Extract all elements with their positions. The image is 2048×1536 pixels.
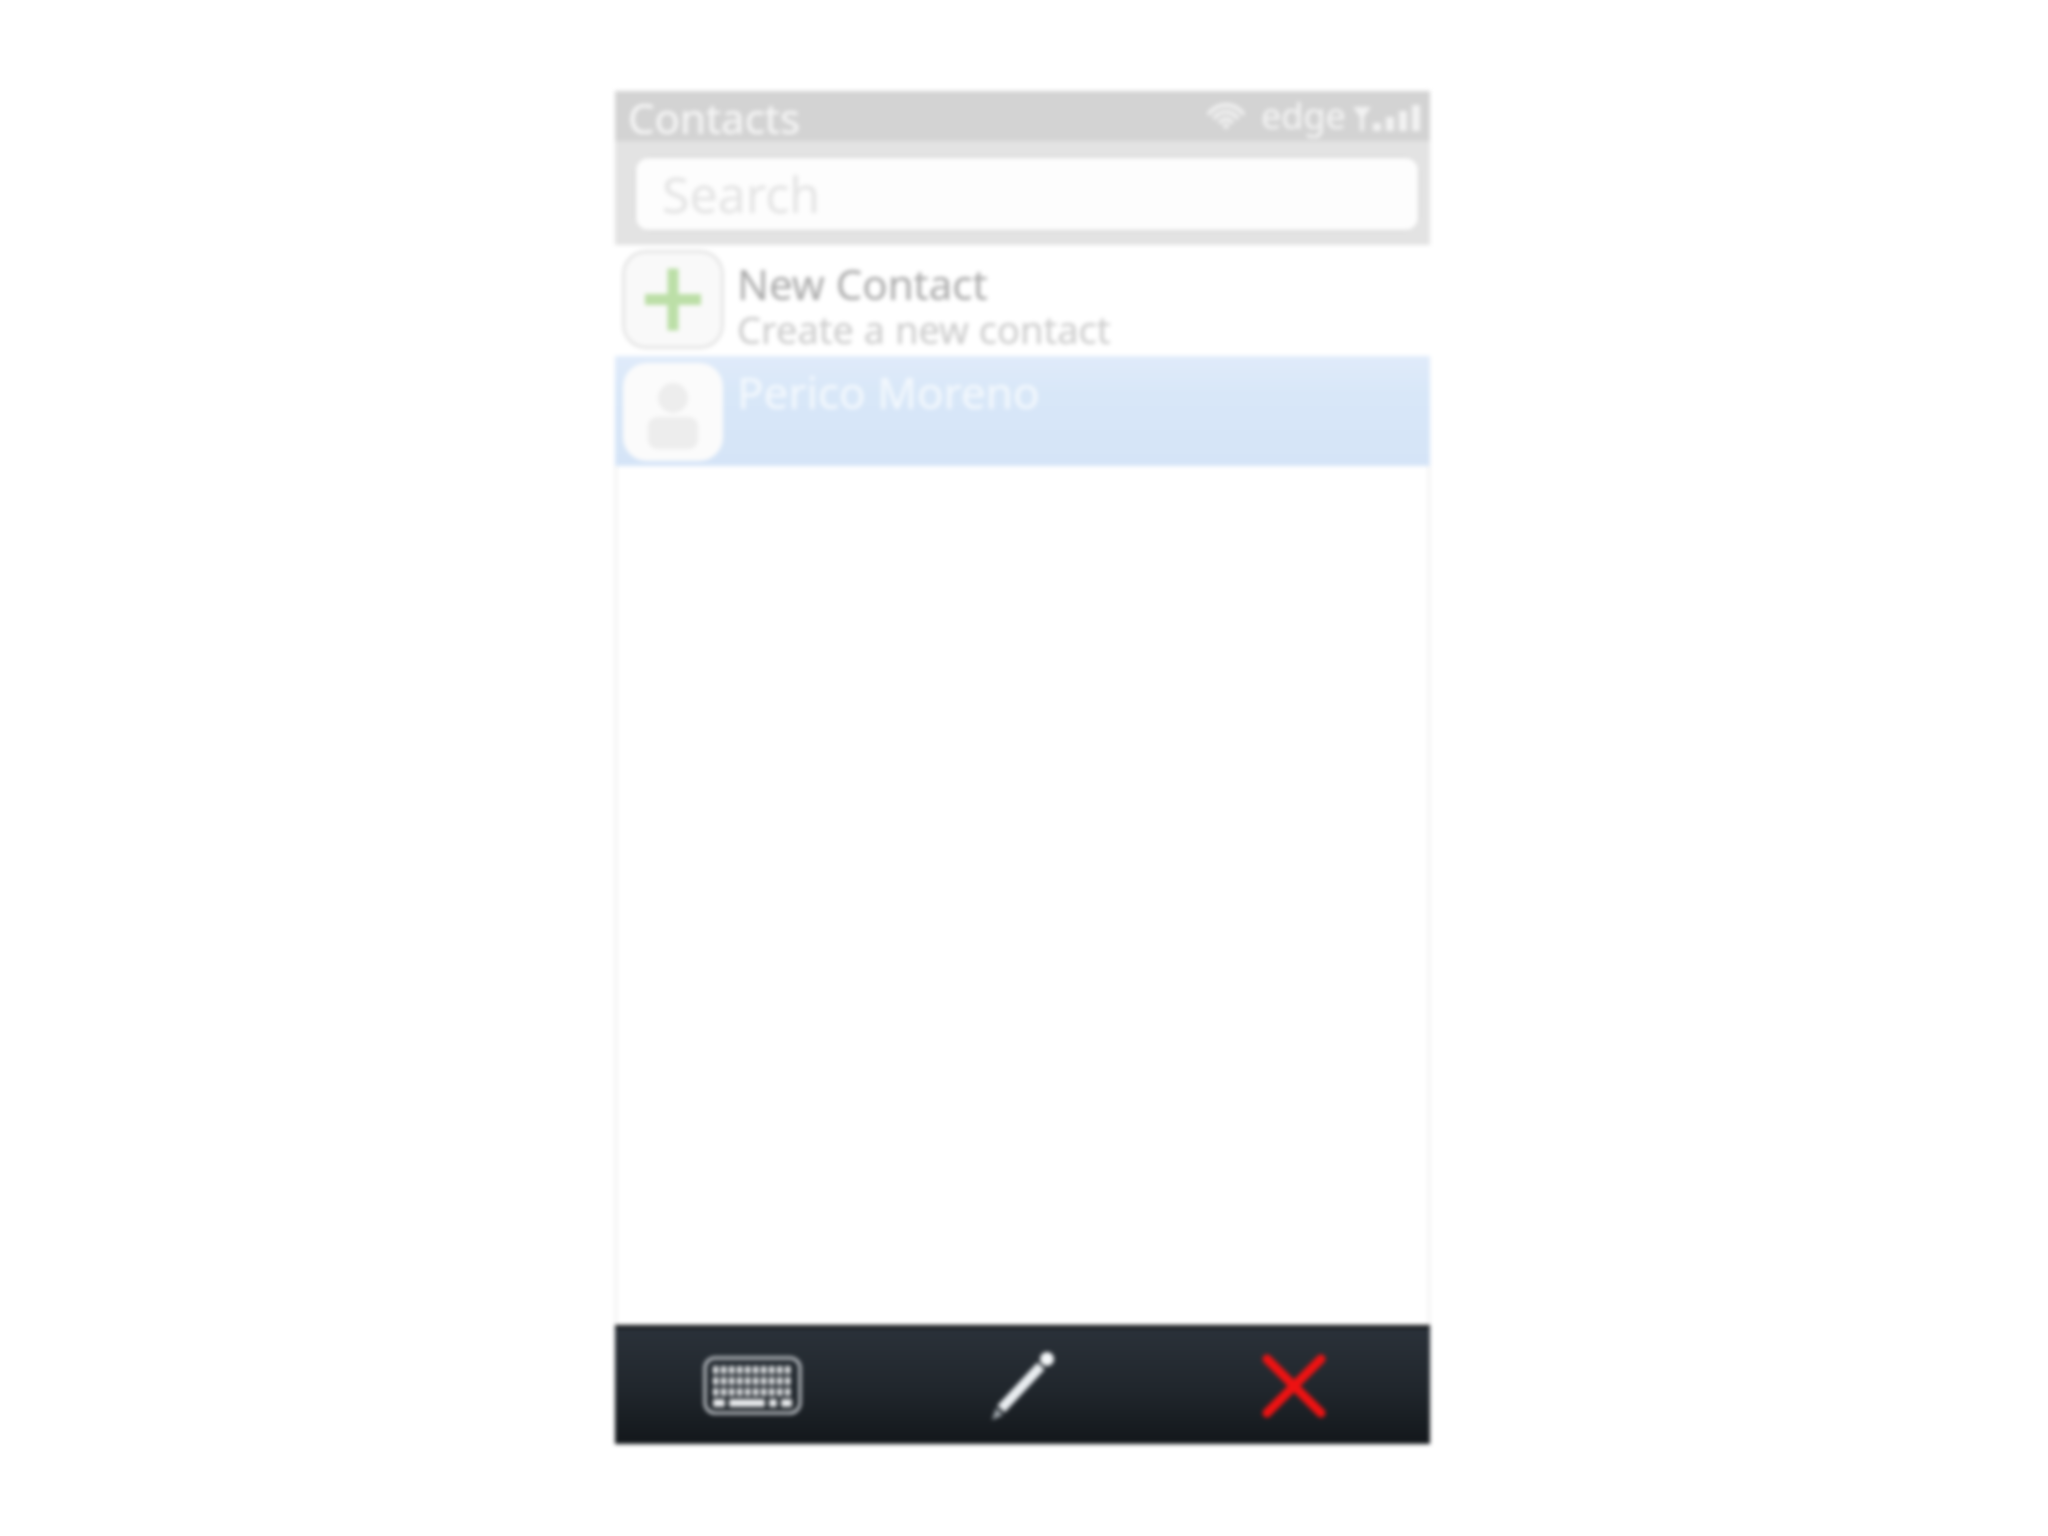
staticText: Contacts [628, 89, 801, 139]
staticText: Perico Moreno [737, 362, 1040, 422]
button[interactable]: Perico Moreno [615, 356, 1430, 466]
button[interactable]: New Contact [615, 245, 1430, 356]
staticText: Search [662, 160, 821, 228]
staticText: Create a new contact [737, 303, 1111, 351]
button[interactable] [693, 1345, 813, 1425]
staticText: edge [1261, 91, 1346, 139]
staticText: New Contact [737, 255, 988, 305]
button[interactable] [962, 1345, 1082, 1425]
button[interactable]: Search [634, 156, 1420, 232]
button[interactable] [1234, 1345, 1354, 1425]
